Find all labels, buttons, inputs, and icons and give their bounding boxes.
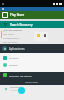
button[interactable]: Play Store [0,11,64,19]
staticText: ¿Por que aparece [3,29,22,32]
staticText: y notificaciones [10,89,26,92]
button[interactable] [34,32,48,41]
button[interactable]: Google [0,61,64,68]
staticText: Desinstalar [25,80,39,83]
staticText: este aviso? [3,33,14,36]
staticText: para tu cuenta [3,41,18,44]
button[interactable] [0,7,64,11]
staticText: Chrome [9,56,19,59]
button[interactable]: Servicios de aplicac. [0,72,64,85]
staticText: Servicios de aplicac. [9,74,33,77]
button[interactable]: Voice search [18,87,25,94]
button[interactable]: Reach Recovery [0,21,64,28]
staticText: Contenido extra [3,37,19,40]
staticText: Permisos [10,86,20,89]
button[interactable]: Aplicaciones [0,44,64,53]
button[interactable]: Chrome [0,54,64,61]
staticText: Reach Recovery [10,23,33,27]
staticText: Play Store [10,13,25,17]
staticText: Google [9,63,18,66]
staticText: Aplicaciones [9,47,25,51]
